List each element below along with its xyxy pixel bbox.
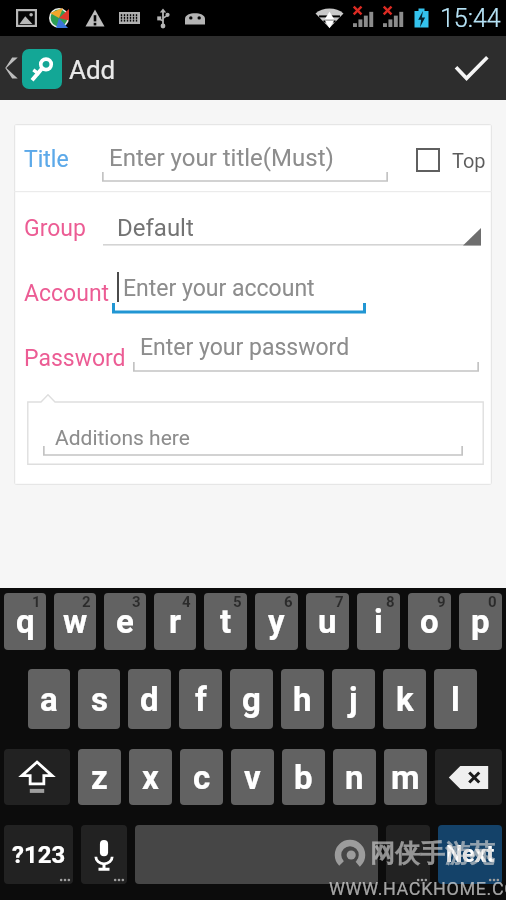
staticText: 15:44 bbox=[440, 4, 501, 33]
staticText: i bbox=[374, 602, 383, 641]
button[interactable]: Additions here bbox=[43, 404, 463, 452]
button[interactable]: r bbox=[154, 593, 196, 650]
staticText: 2 bbox=[82, 593, 91, 611]
staticText: Account bbox=[24, 280, 110, 307]
staticText: 7 bbox=[335, 593, 344, 611]
button[interactable]: e bbox=[104, 593, 146, 650]
staticText: Default bbox=[117, 214, 194, 242]
staticText: d bbox=[140, 680, 159, 719]
staticText: Enter your title(Must) bbox=[109, 144, 334, 172]
staticText: e bbox=[116, 602, 134, 641]
staticText: 1 bbox=[32, 593, 41, 611]
staticText: 5 bbox=[233, 593, 242, 611]
button[interactable]: Enter your account bbox=[112, 270, 366, 318]
staticText: ?123 bbox=[12, 841, 66, 869]
staticText: WWW.HACKHOME.COM bbox=[329, 878, 506, 899]
staticText: g bbox=[242, 680, 261, 719]
button[interactable]: w bbox=[54, 593, 96, 650]
staticText: b bbox=[294, 758, 313, 797]
button[interactable]: h bbox=[281, 669, 324, 729]
staticText: y bbox=[268, 602, 285, 641]
staticText: a bbox=[40, 680, 58, 719]
staticText: 9 bbox=[437, 593, 446, 611]
staticText: Enter your password bbox=[140, 334, 350, 361]
button[interactable]: Top bbox=[416, 140, 486, 180]
button[interactable]: Enter your password bbox=[133, 329, 479, 377]
staticText: u bbox=[318, 602, 337, 641]
staticText: t bbox=[220, 602, 232, 641]
button[interactable]: k bbox=[383, 669, 426, 729]
staticText: 6 bbox=[284, 593, 293, 611]
button[interactable]: Default bbox=[103, 208, 481, 248]
staticText: r bbox=[169, 602, 182, 641]
staticText: k bbox=[396, 680, 414, 719]
button[interactable]: y bbox=[255, 593, 298, 650]
button[interactable]: a bbox=[28, 669, 70, 729]
button[interactable]: c bbox=[180, 749, 223, 805]
button[interactable]: Next bbox=[438, 825, 502, 884]
button[interactable]: z bbox=[78, 749, 121, 805]
button[interactable]: p bbox=[459, 593, 502, 650]
button[interactable]: Navigate up bbox=[0, 36, 22, 100]
button[interactable]: Enter your title(Must) bbox=[102, 139, 388, 187]
staticText: Enter your account bbox=[123, 275, 315, 302]
staticText: v bbox=[244, 758, 261, 797]
staticText: o bbox=[420, 602, 439, 641]
button[interactable]: n bbox=[333, 749, 376, 805]
staticText: Additions here bbox=[55, 426, 190, 451]
staticText: w bbox=[63, 602, 88, 641]
button[interactable]: Symbols bbox=[4, 825, 73, 884]
staticText: Group bbox=[24, 215, 86, 242]
button[interactable]: j bbox=[332, 669, 375, 729]
button[interactable]: l bbox=[434, 669, 477, 729]
button[interactable]: Space bbox=[135, 825, 378, 884]
button[interactable]: Delete bbox=[435, 749, 502, 805]
staticText: 网侠手游苑 bbox=[370, 838, 495, 869]
staticText: l bbox=[451, 680, 460, 719]
staticText: 8 bbox=[386, 593, 395, 611]
staticText: Top bbox=[452, 149, 486, 172]
staticText: 4 bbox=[182, 593, 191, 611]
staticText: Next bbox=[446, 841, 495, 868]
button[interactable]: f bbox=[179, 669, 222, 729]
button[interactable]: o bbox=[408, 593, 451, 650]
staticText: z bbox=[91, 758, 108, 797]
staticText: Title bbox=[24, 146, 69, 173]
staticText: Add bbox=[69, 55, 116, 85]
button[interactable]: Save bbox=[436, 36, 506, 100]
button[interactable]: Comma bbox=[386, 825, 430, 884]
button[interactable]: d bbox=[128, 669, 171, 729]
staticText: 0 bbox=[488, 593, 497, 611]
button[interactable]: x bbox=[129, 749, 172, 805]
staticText: m bbox=[391, 758, 420, 797]
button[interactable]: v bbox=[231, 749, 274, 805]
staticText: Password bbox=[24, 345, 126, 372]
button[interactable]: i bbox=[357, 593, 400, 650]
staticText: s bbox=[91, 680, 108, 719]
button[interactable]: b bbox=[282, 749, 325, 805]
button[interactable]: Shift bbox=[4, 749, 70, 805]
button[interactable]: m bbox=[384, 749, 427, 805]
staticText: q bbox=[16, 602, 35, 641]
staticText: j bbox=[349, 680, 358, 719]
button[interactable]: s bbox=[78, 669, 120, 729]
staticText: h bbox=[293, 680, 312, 719]
staticText: c bbox=[193, 758, 211, 797]
staticText: p bbox=[471, 602, 490, 641]
button[interactable]: u bbox=[306, 593, 349, 650]
button[interactable]: t bbox=[204, 593, 247, 650]
staticText: f bbox=[195, 680, 207, 719]
button[interactable]: q bbox=[4, 593, 46, 650]
staticText: 3 bbox=[132, 593, 141, 611]
staticText: n bbox=[345, 758, 364, 797]
button[interactable]: Voice input bbox=[81, 825, 127, 884]
button[interactable]: g bbox=[230, 669, 273, 729]
staticText: x bbox=[142, 758, 159, 797]
